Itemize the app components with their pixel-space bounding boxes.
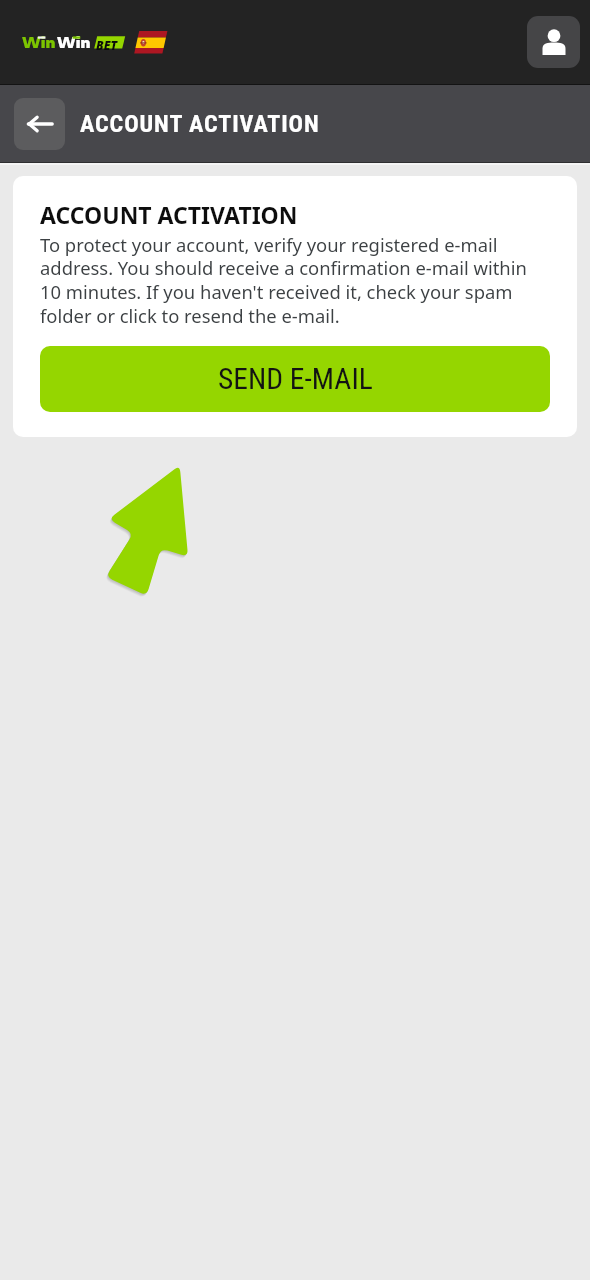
staticText: To protect your account, verify your reg… <box>40 232 550 329</box>
staticText: SEND E-MAIL <box>218 362 373 397</box>
staticText: Win <box>22 34 56 51</box>
button[interactable]: Back <box>14 98 65 150</box>
staticText: ACCOUNT ACTIVATION <box>40 199 298 230</box>
button[interactable]: WinWin BET home <box>20 27 170 57</box>
button[interactable]: SEND E-MAIL <box>40 346 550 412</box>
staticText: ACCOUNT ACTIVATION <box>80 110 320 138</box>
staticText: BET <box>96 37 118 53</box>
staticText: Win <box>57 34 91 51</box>
button[interactable]: Account <box>527 16 580 68</box>
